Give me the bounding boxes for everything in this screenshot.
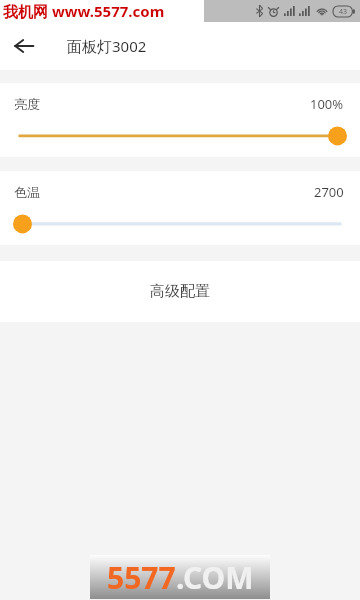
staticText: 5577 xyxy=(107,557,176,598)
staticText: 2700 xyxy=(314,183,344,201)
staticText: 高级配置 xyxy=(150,282,210,301)
staticText: 100% xyxy=(310,95,344,113)
staticText: 色温 xyxy=(14,184,40,200)
button[interactable]: 色温 slider xyxy=(0,201,360,245)
staticText: .COM xyxy=(176,557,254,598)
button[interactable]: 亮度 slider xyxy=(0,113,360,157)
staticText: 面板灯3002 xyxy=(67,36,147,56)
staticText: 43 xyxy=(339,7,348,17)
staticText: 我机网 www.5577.com xyxy=(3,1,165,21)
staticText: 亮度 xyxy=(14,96,40,112)
button[interactable]: Back xyxy=(0,22,48,70)
button[interactable]: 高级配置 xyxy=(0,261,360,322)
